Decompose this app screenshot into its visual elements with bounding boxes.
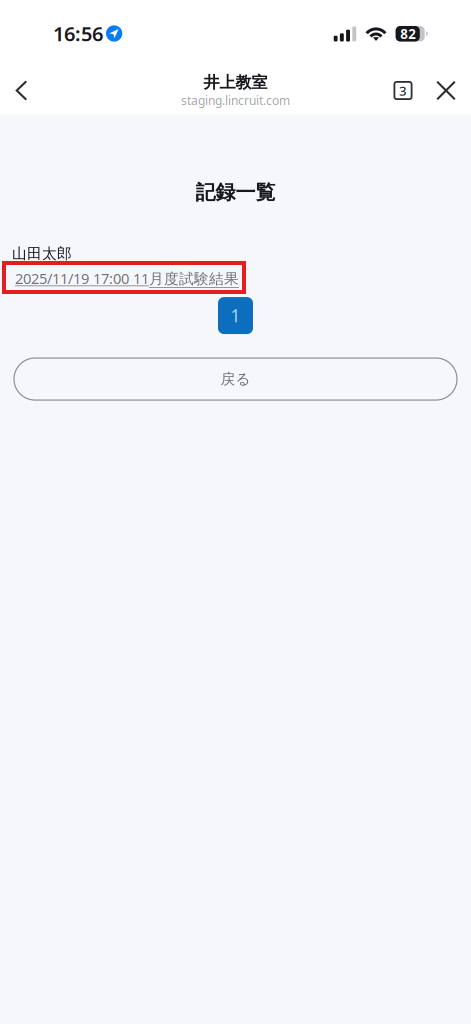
staticText: 井上教室 bbox=[203, 73, 267, 92]
staticText: staging.lincruit.com bbox=[181, 92, 290, 108]
button[interactable]: 戻る bbox=[14, 358, 457, 400]
button[interactable]: Back bbox=[0, 67, 43, 114]
staticText: 16:56 bbox=[53, 20, 103, 47]
staticText: 2025/11/19 17:00 11月度試験結果 bbox=[15, 269, 239, 288]
staticText: 3 bbox=[399, 82, 407, 99]
button[interactable]: Open tabs bbox=[382, 67, 424, 113]
staticText: 戻る bbox=[220, 370, 250, 388]
staticText: 記録一覧 bbox=[195, 180, 275, 205]
staticText: 82 bbox=[400, 25, 416, 43]
staticText: 山田太郎 bbox=[12, 245, 72, 263]
button[interactable]: 2025/11/19 17:00 11月度試験結果 bbox=[12, 269, 239, 288]
button[interactable]: Close bbox=[424, 67, 468, 113]
button[interactable]: 1 bbox=[218, 297, 253, 334]
staticText: 1 bbox=[230, 304, 240, 327]
